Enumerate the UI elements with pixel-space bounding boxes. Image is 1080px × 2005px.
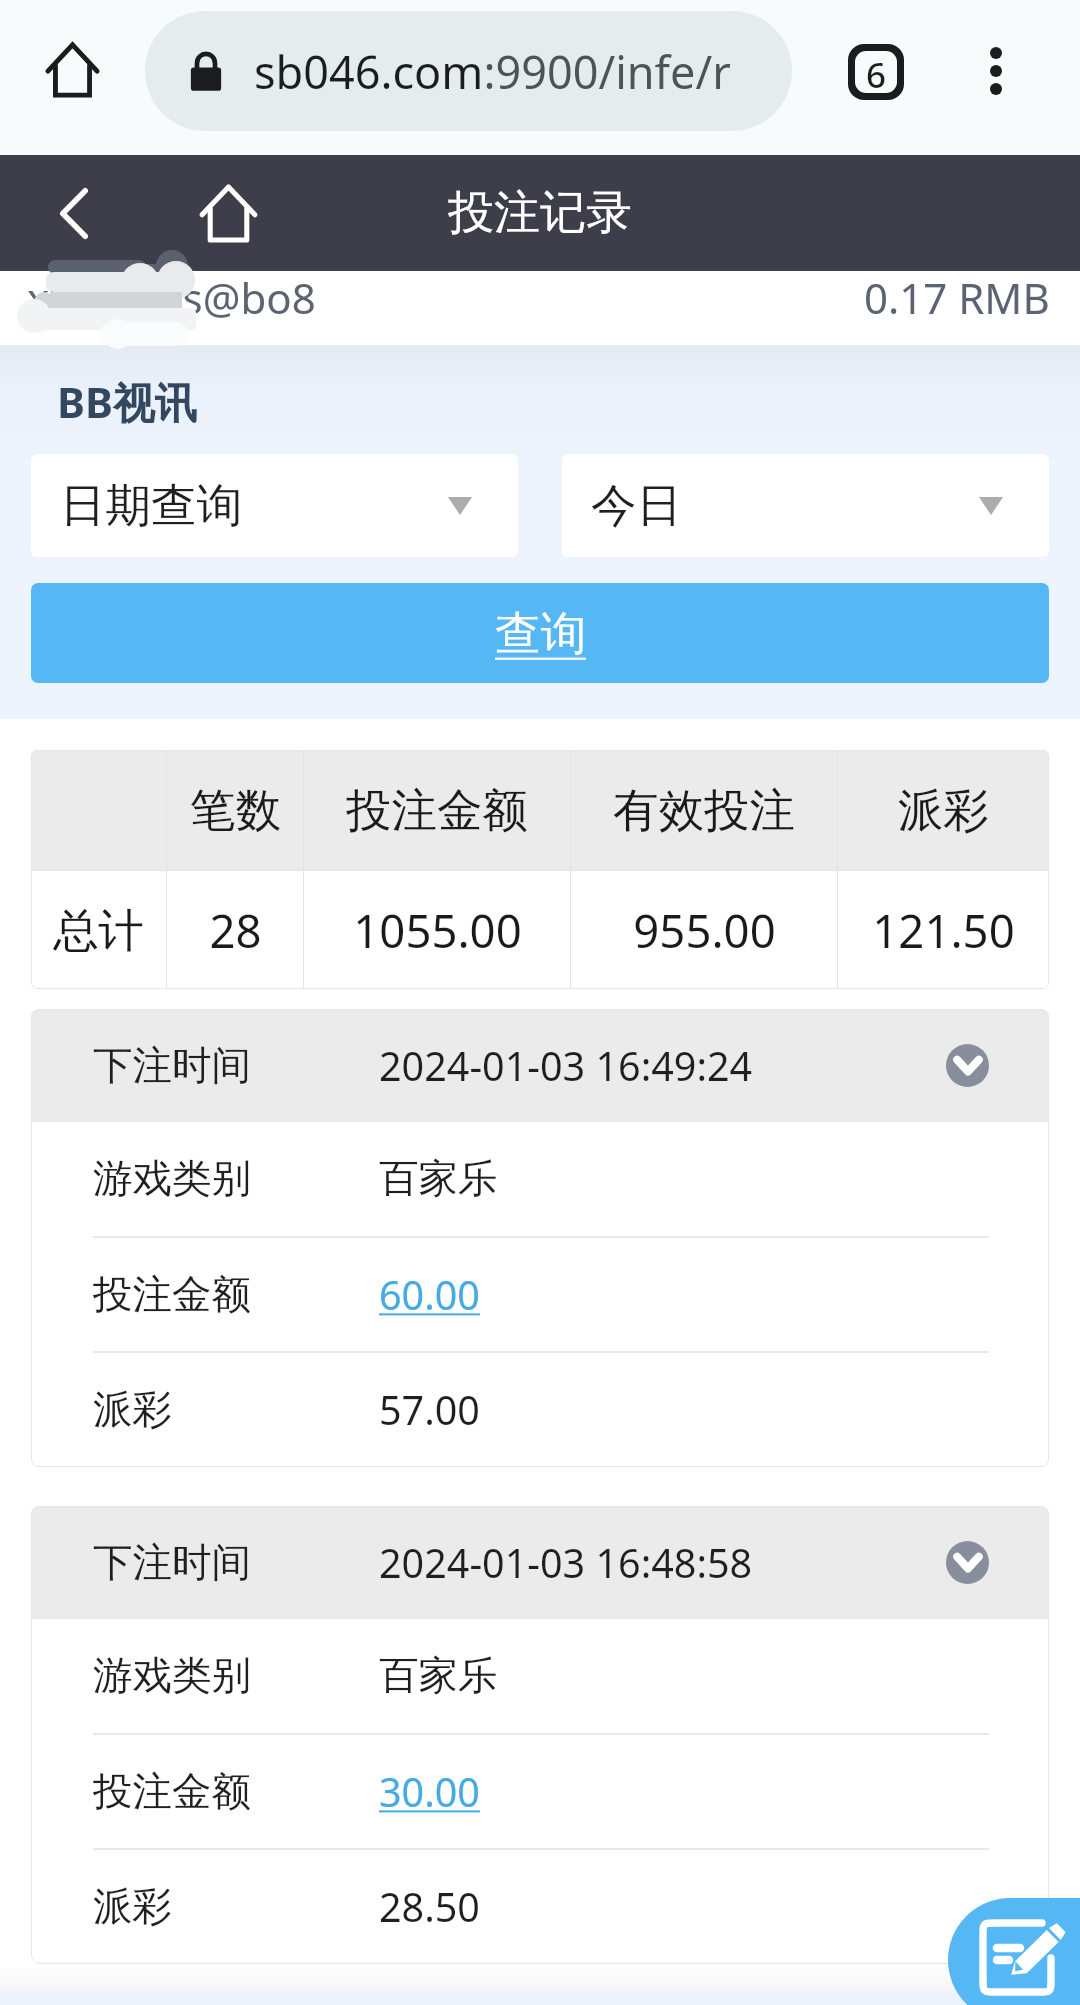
button[interactable]: sb046.com:9900/infe/r bbox=[145, 11, 792, 131]
button[interactable]: Home bbox=[182, 167, 274, 259]
staticText: BB视讯 bbox=[57, 373, 197, 430]
staticText: 121.50 bbox=[872, 899, 1015, 961]
staticText: 955.00 bbox=[633, 899, 776, 961]
staticText: sb046.com:9900/infe/r bbox=[254, 41, 731, 102]
button[interactable]: Home bbox=[22, 20, 122, 120]
other: Expand details bbox=[946, 1044, 989, 1087]
staticText: 投注金额 bbox=[93, 1767, 251, 1817]
button[interactable]: 游戏类别 bbox=[31, 1619, 1049, 1733]
staticText: 今日 bbox=[591, 477, 682, 534]
staticText: 游戏类别 bbox=[93, 1651, 251, 1701]
staticText: 百家乐 bbox=[379, 1154, 498, 1204]
staticText: 28 bbox=[209, 899, 262, 961]
staticText: 派彩 bbox=[93, 1882, 172, 1932]
staticText: 日期查询 bbox=[60, 477, 242, 534]
staticText: 下注时间 bbox=[93, 1041, 251, 1091]
button[interactable]: 60.00 bbox=[379, 1268, 480, 1322]
button[interactable]: More options bbox=[940, 15, 1052, 127]
staticText: 游戏类别 bbox=[93, 1154, 251, 1204]
staticText: 百家乐 bbox=[379, 1651, 498, 1701]
button[interactable]: 投注金额 bbox=[31, 1238, 1049, 1351]
staticText: 查询 bbox=[495, 605, 586, 662]
staticText: 总计 bbox=[53, 902, 144, 959]
button[interactable]: 下注时间 bbox=[31, 1009, 1049, 1122]
button[interactable]: 游戏类别 bbox=[31, 1122, 1049, 1236]
other: Expand details bbox=[946, 1541, 989, 1584]
staticText: 57.00 bbox=[379, 1383, 480, 1437]
staticText: 下注时间 bbox=[93, 1538, 251, 1588]
button[interactable]: Back bbox=[28, 167, 120, 259]
button[interactable]: 派彩 bbox=[31, 1850, 1049, 1964]
staticText: 笔数 bbox=[190, 782, 281, 839]
staticText: 投注金额 bbox=[93, 1270, 251, 1320]
button[interactable]: 今日 bbox=[562, 454, 1049, 557]
staticText: 0.17 RMB bbox=[864, 269, 1050, 326]
button[interactable]: Compose new entry bbox=[945, 1898, 1080, 2005]
button[interactable]: 下注时间 bbox=[31, 1506, 1049, 1619]
staticText: 投注记录 bbox=[448, 184, 632, 242]
staticText: 派彩 bbox=[898, 782, 989, 839]
staticText: 派彩 bbox=[93, 1385, 172, 1435]
staticText: 2024-01-03 16:48:58 bbox=[379, 1536, 753, 1590]
staticText: 6 bbox=[866, 51, 887, 93]
staticText: 投注金额 bbox=[346, 782, 528, 839]
button[interactable]: 查询 bbox=[31, 583, 1049, 683]
button[interactable]: 30.00 bbox=[379, 1765, 480, 1819]
staticText: 有效投注 bbox=[613, 782, 795, 839]
button[interactable]: 投注金额 bbox=[31, 1735, 1049, 1848]
staticText: 28.50 bbox=[379, 1880, 480, 1934]
staticText: xxxxxxxs@bo8 bbox=[27, 269, 316, 326]
staticText: 1055.00 bbox=[353, 899, 522, 961]
button[interactable]: 日期查询 bbox=[31, 454, 518, 557]
button[interactable]: Tabs bbox=[826, 22, 926, 122]
button[interactable]: 派彩 bbox=[31, 1353, 1049, 1467]
staticText: 2024-01-03 16:49:24 bbox=[379, 1039, 753, 1093]
